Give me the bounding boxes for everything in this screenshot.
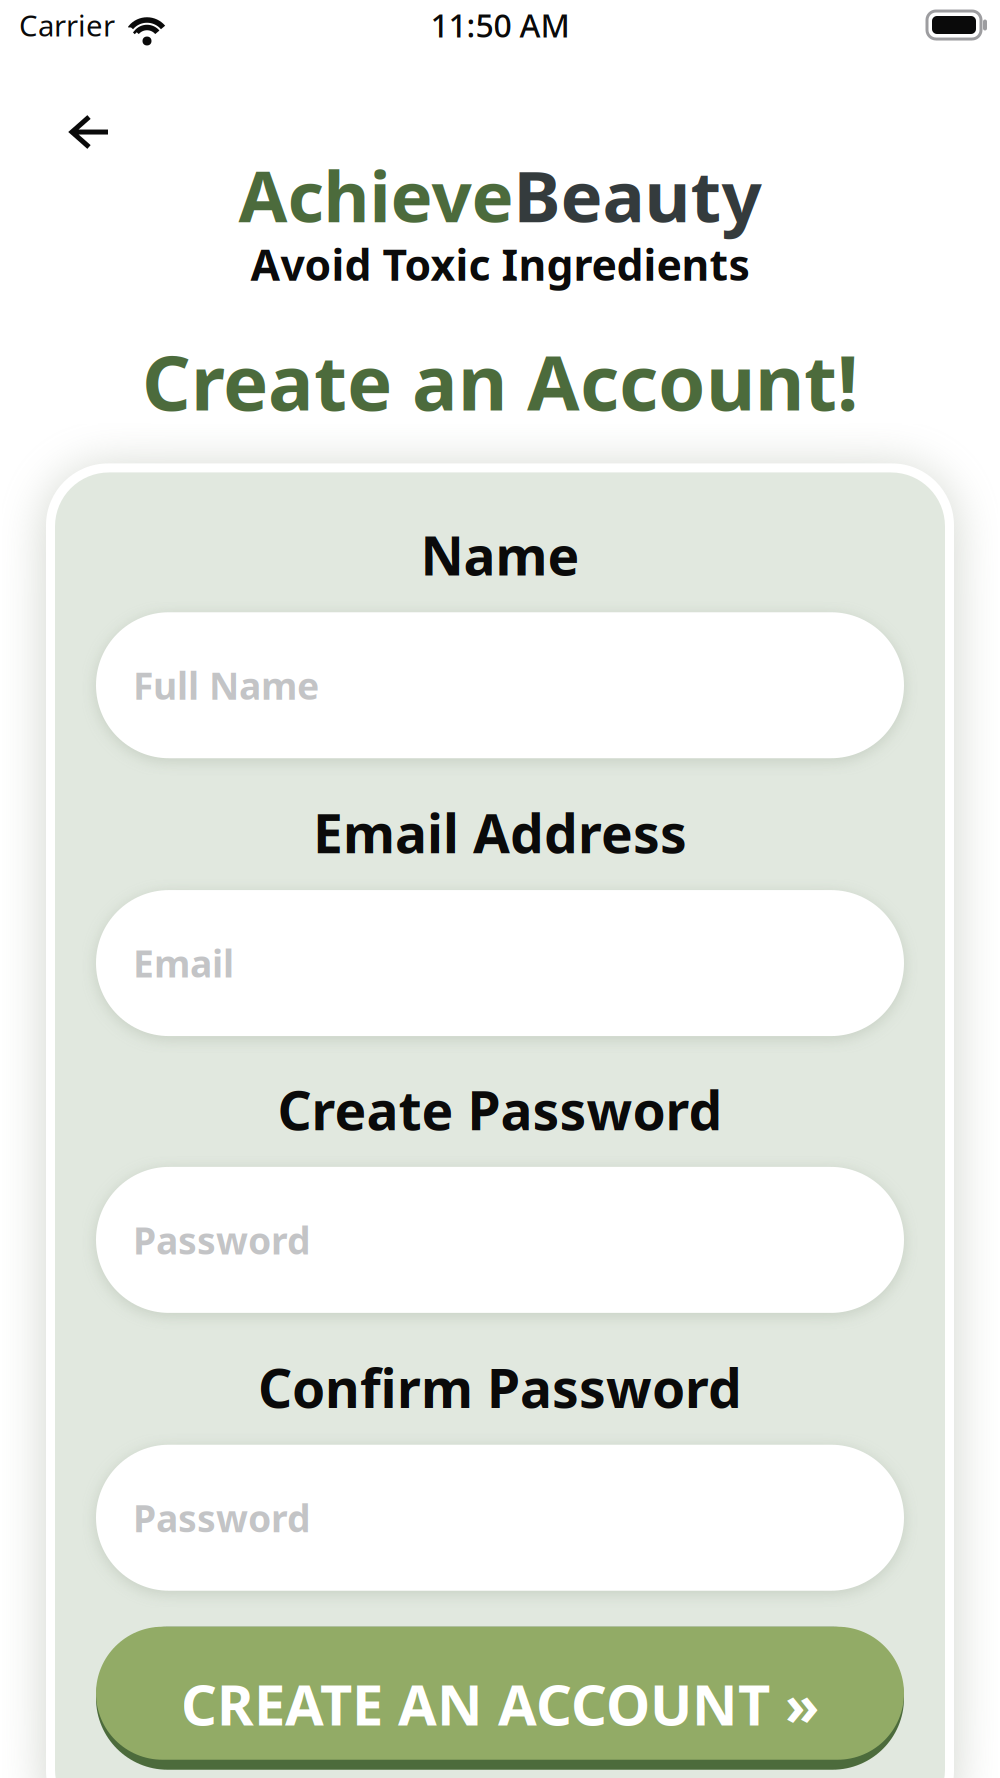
staticText: Password <box>133 1493 311 1542</box>
staticText: Avoid Toxic Ingredients <box>250 236 749 292</box>
staticText: Create an Account! <box>142 330 858 431</box>
staticText: Name <box>420 519 579 590</box>
button[interactable]: Full Name <box>96 612 904 758</box>
button[interactable]: Back <box>68 112 116 152</box>
staticText: Full Name <box>133 660 319 710</box>
button[interactable]: Password <box>96 1445 904 1591</box>
staticText: Create Password <box>277 1074 722 1145</box>
staticText: Email <box>133 938 234 988</box>
staticText: Password <box>133 1215 311 1265</box>
staticText: 11:50 AM <box>430 4 569 46</box>
staticText: Confirm Password <box>258 1352 742 1423</box>
button[interactable]: CREATE AN ACCOUNT » <box>96 1627 904 1770</box>
button[interactable]: Password <box>96 1167 904 1313</box>
staticText: Carrier <box>19 5 115 44</box>
button[interactable]: Email <box>96 890 904 1036</box>
staticText: Email Address <box>313 797 687 868</box>
staticText: CREATE AN ACCOUNT » <box>181 1666 819 1741</box>
staticText: Achieve <box>238 148 513 242</box>
staticText: Beauty <box>513 148 761 242</box>
